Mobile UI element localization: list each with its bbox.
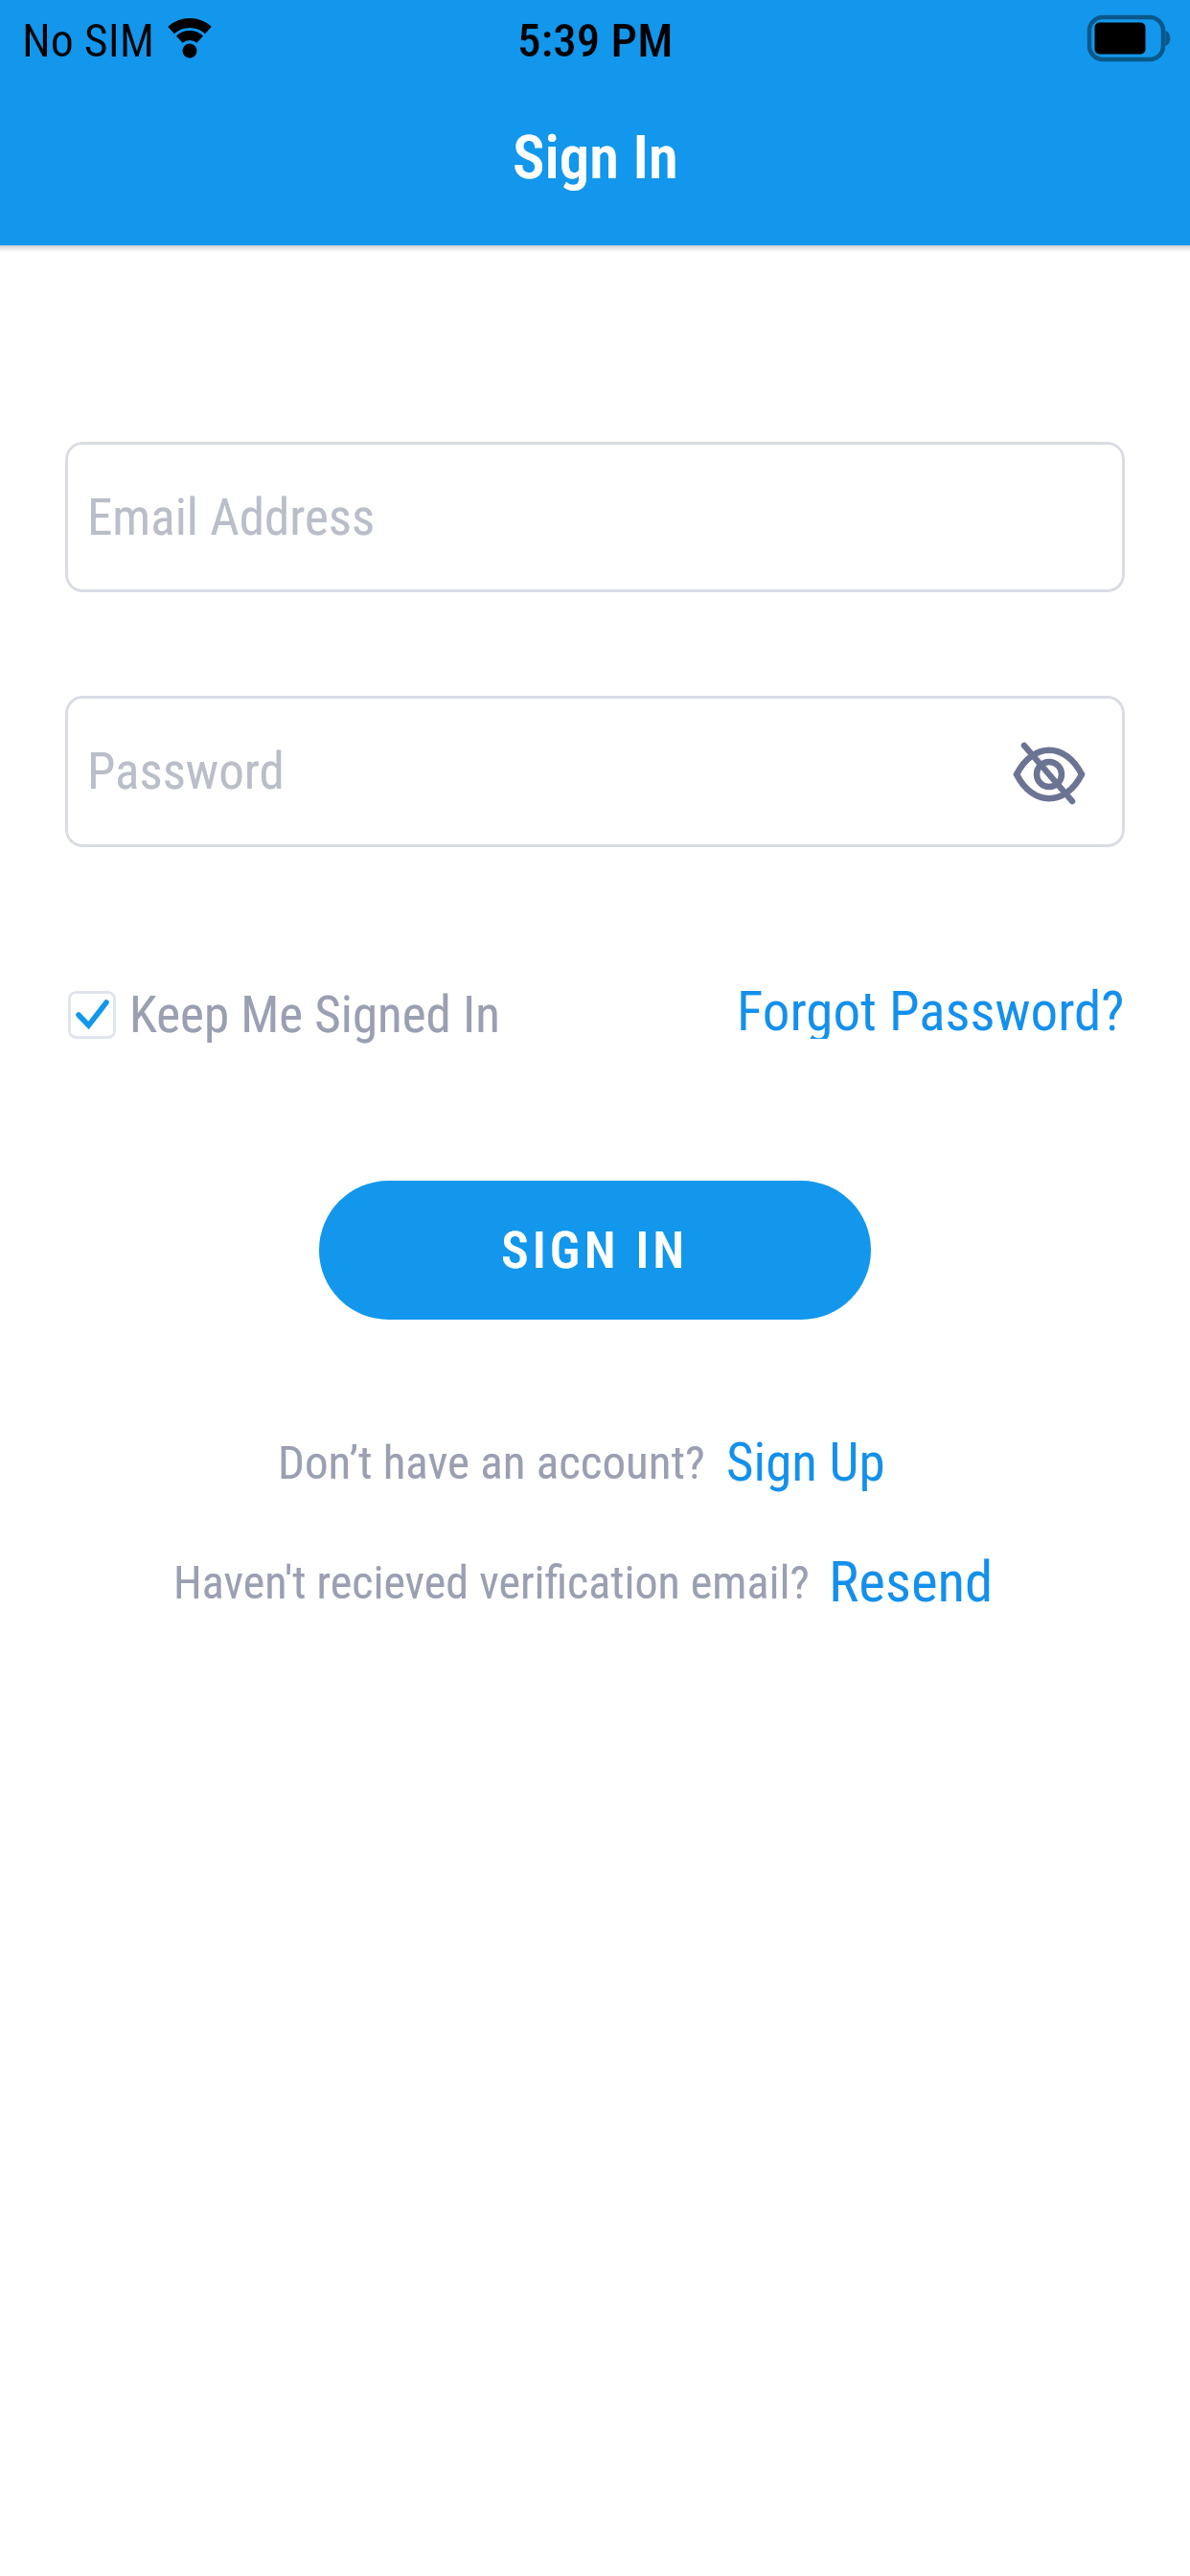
staticText: Keep Me Signed In <box>129 985 500 1045</box>
button[interactable]: SIGN IN <box>319 1181 871 1320</box>
button[interactable]: Sign Up <box>726 1432 885 1493</box>
button[interactable]: Password <box>65 696 1125 847</box>
staticText: 5:39 PM <box>517 13 674 67</box>
button[interactable]: Email Address <box>65 442 1125 592</box>
button[interactable]: Resend <box>829 1549 994 1615</box>
staticText: SIGN IN <box>501 1220 689 1280</box>
staticText: Sign In <box>513 123 678 194</box>
staticText: Password <box>87 742 285 801</box>
button[interactable]: Keep Me Signed In <box>68 985 500 1045</box>
button[interactable] <box>987 728 1111 816</box>
staticText: Don’t have an account? <box>278 1436 705 1490</box>
staticText: Email Address <box>87 488 376 547</box>
button[interactable]: Forgot Password? <box>737 979 1125 1039</box>
staticText: Haven't recieved verification email? <box>173 1555 810 1609</box>
staticText: No SIM <box>22 13 154 67</box>
